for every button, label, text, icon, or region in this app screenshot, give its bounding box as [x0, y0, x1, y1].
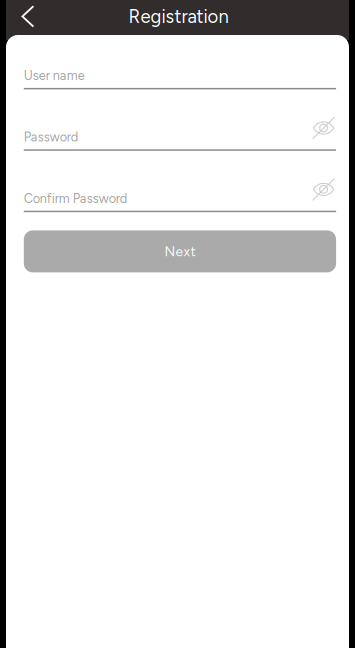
button[interactable]: Back	[21, 1, 45, 31]
button[interactable]: Show password	[312, 116, 335, 139]
staticText: Next	[164, 243, 195, 260]
staticText: User name	[24, 68, 85, 83]
button[interactable]: Show password	[312, 178, 335, 201]
staticText: Registration	[128, 5, 228, 28]
staticText: Password	[24, 129, 79, 145]
button[interactable]: Next	[24, 230, 336, 272]
staticText: Confirm Password	[24, 191, 128, 206]
